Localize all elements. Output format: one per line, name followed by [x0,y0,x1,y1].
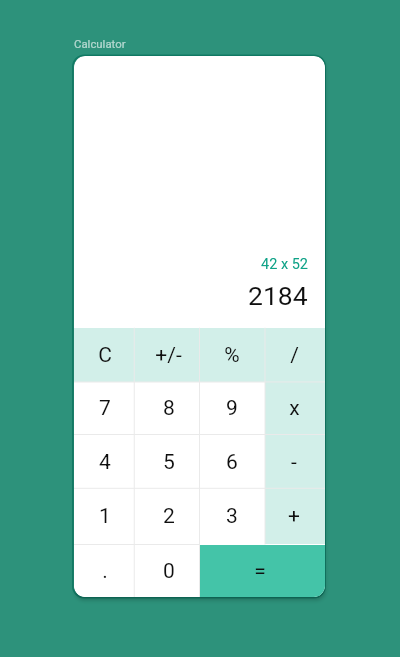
button[interactable]: - [265,435,325,489]
staticText: 6 [226,450,238,475]
button[interactable]: C [74,328,134,382]
button[interactable]: 0 [134,545,199,597]
staticText: 2 [163,504,175,529]
button[interactable]: 6 [200,435,266,489]
button[interactable]: 7 [74,382,134,435]
button[interactable]: . [74,545,134,597]
button[interactable]: 9 [200,382,266,435]
button[interactable]: 2 [134,488,199,544]
button[interactable]: 5 [134,435,199,489]
staticText: 1 [99,504,111,529]
staticText: 5 [163,450,175,475]
staticText: 7 [99,396,111,421]
staticText: 2184 [248,280,308,311]
button[interactable]: 4 [74,435,134,489]
staticText: 0 [163,559,175,584]
staticText: - [291,450,297,475]
staticText: Calculator [74,37,126,50]
staticText: 4 [99,450,111,475]
staticText: / [290,343,299,368]
button[interactable]: x [265,382,325,435]
staticText: + [288,504,300,529]
staticText: 42 x 52 [261,256,308,273]
button[interactable]: = [200,545,325,597]
button[interactable]: 3 [200,488,266,544]
staticText: +/- [155,343,182,368]
staticText: 8 [163,396,175,421]
button[interactable]: +/- [134,328,199,382]
staticText: . [102,559,108,584]
staticText: % [224,343,240,368]
staticText: 9 [226,396,238,421]
staticText: C [98,343,112,368]
button[interactable]: 8 [134,382,199,435]
staticText: x [289,396,300,421]
staticText: = [254,559,266,584]
button[interactable]: % [200,328,266,382]
staticText: 3 [226,504,238,529]
button[interactable]: / [265,328,325,382]
button[interactable]: + [265,488,325,544]
button[interactable]: 1 [74,488,134,544]
